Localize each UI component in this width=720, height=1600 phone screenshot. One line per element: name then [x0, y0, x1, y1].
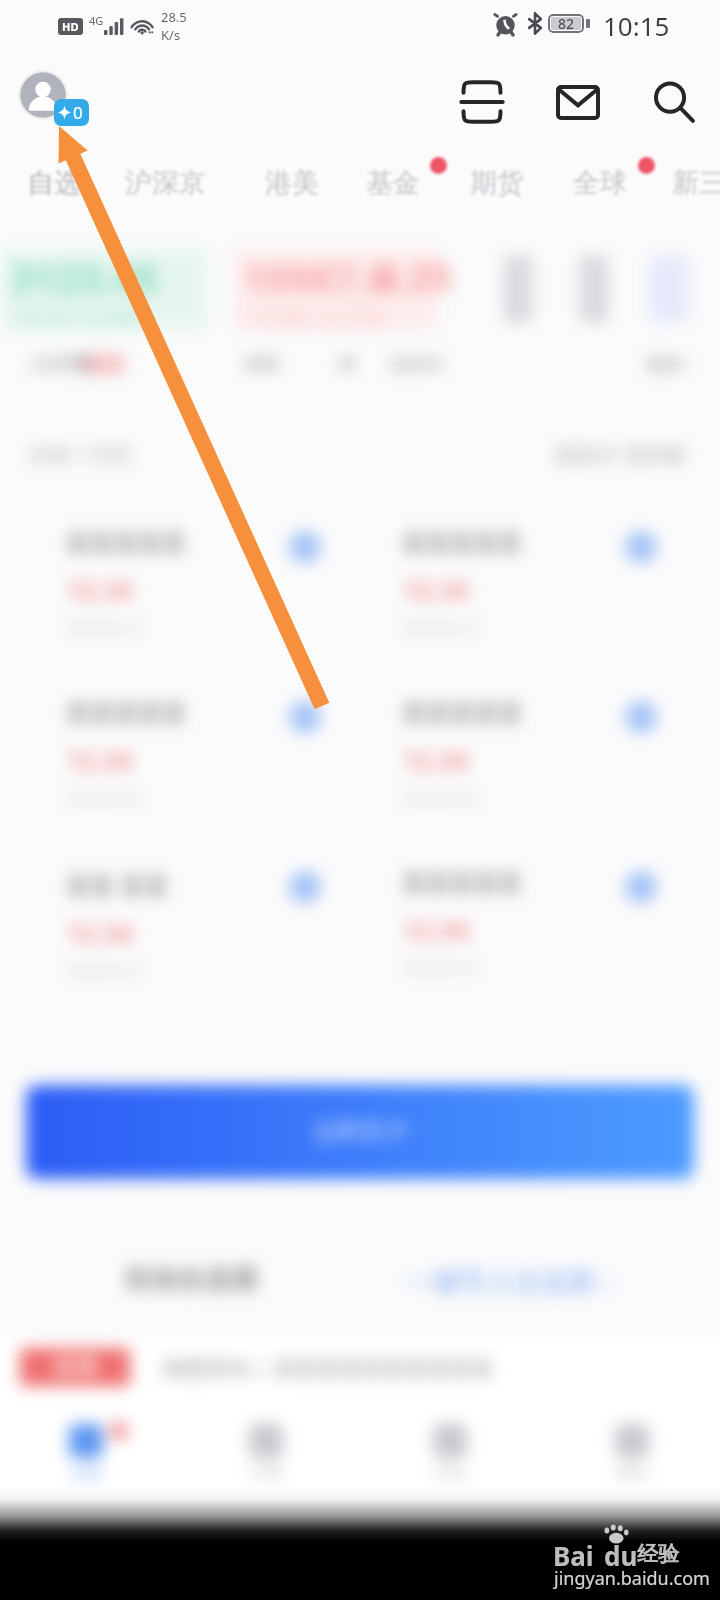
staticText: 3123.45: [10, 250, 159, 304]
staticText: 添加自选股: [124, 1262, 259, 1296]
staticText: 全球: [573, 166, 627, 200]
button[interactable]: 基金: [354, 160, 432, 206]
button[interactable]: 行情: [218, 1424, 314, 1500]
staticText: 港股异动 | 某某某某某某某某某某: [162, 1352, 494, 1382]
button[interactable]: 某某某某某: [398, 506, 688, 666]
staticText: 12.34: [66, 742, 133, 777]
button[interactable]: 立即开户: [26, 1085, 694, 1179]
staticText: 直播: [53, 1353, 97, 1381]
button[interactable]: 交易: [402, 1424, 498, 1500]
button[interactable]: Profile: [18, 70, 92, 120]
staticText: K/s: [161, 26, 181, 44]
staticText: 10987.6: [242, 250, 391, 304]
button[interactable]: 3123.45: [2, 248, 208, 330]
button[interactable]: 某某某某某: [398, 846, 688, 1006]
button[interactable]: 我的: [584, 1424, 680, 1500]
staticText: 期货: [470, 166, 524, 200]
staticText: 最新价 涨跌幅: [554, 440, 686, 469]
staticText: 交易: [434, 1463, 466, 1483]
button[interactable]: 一键导入自选股 ›: [406, 1262, 611, 1299]
staticText: 港美: [265, 166, 319, 200]
staticText: 基金: [366, 166, 420, 200]
button[interactable]: 期货: [458, 160, 536, 206]
staticText: 12.34: [66, 915, 133, 950]
button[interactable]: Scan code: [446, 66, 518, 138]
button[interactable]: Add to watchlist: [289, 531, 321, 563]
button[interactable]: 某某某某某: [62, 506, 352, 666]
staticText: 更多>: [646, 352, 690, 375]
staticText: 深成: [244, 353, 278, 374]
staticText: 我的: [616, 1463, 648, 1483]
button[interactable]: [650, 256, 688, 322]
button[interactable]: 全球: [561, 160, 639, 206]
staticText: 某某某某某: [402, 868, 522, 898]
staticText: 上证指数: [26, 353, 94, 374]
staticText: 北证50: [389, 352, 443, 375]
button[interactable]: Add to watchlist: [625, 871, 657, 903]
staticText: jingyan.baidu.com: [554, 1566, 710, 1591]
staticText: 自选: [70, 1463, 102, 1483]
staticText: 沪深京: [125, 166, 206, 200]
staticText: 10:15: [603, 8, 670, 43]
button[interactable]: Add to watchlist: [289, 871, 321, 903]
staticText: 3.25: [376, 250, 452, 302]
button[interactable]: 某某某某某: [398, 676, 688, 836]
staticText: 某某某某某: [402, 528, 522, 558]
staticText: 立即开户: [312, 1117, 408, 1147]
staticText: 12.34: [402, 912, 469, 947]
button[interactable]: 新三板: [660, 160, 720, 206]
staticText: 12.34: [66, 572, 133, 607]
button[interactable]: 某某某某某: [62, 676, 352, 836]
staticText: 创: [338, 353, 355, 374]
staticText: 某某某某某: [66, 528, 186, 558]
button[interactable]: Add to watchlist: [625, 701, 657, 733]
staticText: 12.34: [402, 572, 469, 607]
staticText: HD: [62, 19, 79, 34]
button[interactable]: 添加自选股: [124, 1262, 259, 1296]
button[interactable]: Search: [638, 66, 710, 138]
button[interactable]: [580, 256, 608, 322]
staticText: 4G: [89, 13, 104, 28]
button[interactable]: 港美: [253, 160, 331, 206]
button[interactable]: Add to watchlist: [625, 531, 657, 563]
button[interactable]: 直播: [20, 1336, 720, 1398]
button[interactable]: 自选: [15, 160, 93, 206]
staticText: 名称 / 代码: [28, 440, 131, 469]
staticText: 行情: [250, 1463, 282, 1483]
staticText: 0: [73, 101, 83, 124]
staticText: 自选: [27, 166, 81, 200]
button[interactable]: Messages: [542, 66, 614, 138]
button[interactable]: 某某 某某: [62, 846, 352, 1006]
button[interactable]: 10987.6: [234, 248, 438, 330]
button[interactable]: 沪深京: [113, 160, 218, 206]
staticText: 28.5: [161, 8, 187, 26]
staticText: 82: [558, 14, 575, 33]
staticText: 一键导入自选股 ›: [406, 1262, 611, 1299]
staticText: 某某 某某: [66, 868, 169, 901]
button[interactable]: [504, 256, 532, 322]
button[interactable]: Add to watchlist: [289, 701, 321, 733]
staticText: 某某某某某: [66, 698, 186, 728]
staticText: 新三板: [672, 166, 720, 200]
staticText: 经验: [637, 1541, 679, 1567]
staticText: 12.34: [402, 742, 469, 777]
staticText: du: [604, 1538, 638, 1573]
staticText: Bai: [553, 1538, 594, 1573]
staticText: -18.20 -0.58%: [10, 306, 142, 330]
staticText: 某某某某某: [402, 698, 522, 728]
button[interactable]: 自选: [38, 1424, 134, 1500]
